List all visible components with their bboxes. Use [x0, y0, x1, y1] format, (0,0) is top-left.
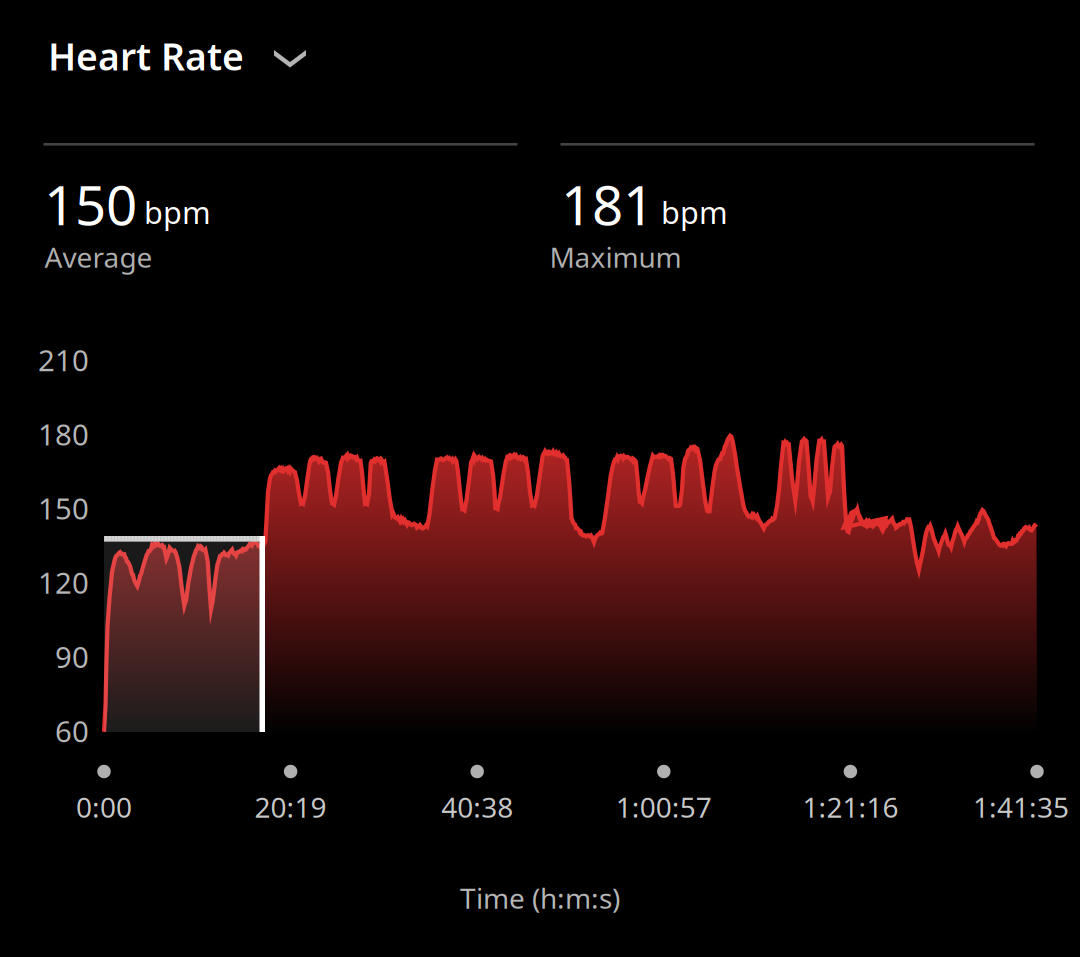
- staticText: 40:38: [441, 788, 513, 826]
- button[interactable]: Heart Rate: [48, 10, 368, 102]
- staticText: 150: [44, 168, 137, 240]
- staticText: Time (h:m:s): [460, 879, 620, 917]
- staticText: 180: [38, 414, 89, 453]
- staticText: 20:19: [255, 788, 327, 826]
- staticText: 150: [38, 489, 89, 528]
- staticText: 120: [38, 563, 89, 602]
- staticText: Heart Rate: [48, 31, 244, 81]
- staticText: 1:41:35: [973, 788, 1069, 826]
- staticText: 1:00:57: [616, 788, 712, 826]
- staticText: 90: [55, 637, 89, 676]
- staticText: 181: [561, 168, 654, 240]
- staticText: 1:21:16: [802, 788, 898, 826]
- staticText: bpm: [661, 192, 728, 232]
- staticText: 0:00: [76, 788, 132, 826]
- button[interactable]: Selected time range: [104, 536, 265, 732]
- staticText: bpm: [144, 192, 211, 232]
- staticText: 210: [38, 340, 89, 379]
- staticText: Maximum: [549, 238, 681, 276]
- staticText: 60: [55, 711, 89, 750]
- staticText: Average: [44, 238, 152, 276]
